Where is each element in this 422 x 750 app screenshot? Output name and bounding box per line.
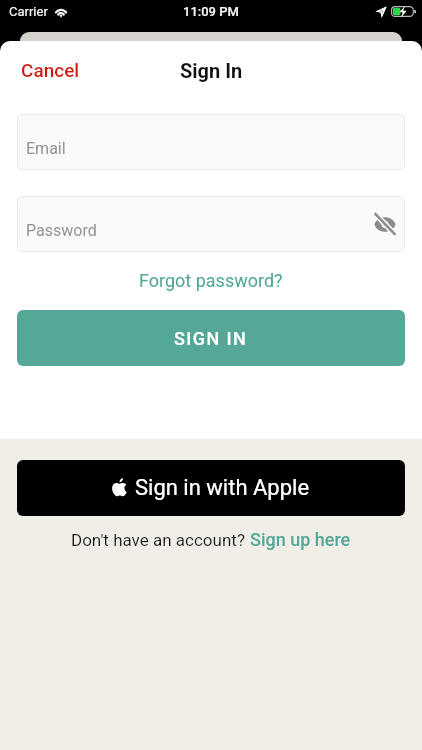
button[interactable]: SIGN IN [17,310,405,366]
button[interactable]: Sign up here [250,529,351,550]
button[interactable]: Email [17,114,405,170]
other: Battery charging [391,6,416,17]
staticText: Forgot password? [139,270,283,291]
button[interactable]: Cancel [0,51,94,89]
staticText: SIGN IN [174,328,248,349]
staticText: Sign up here [250,529,351,550]
staticText: Sign in with Apple [135,475,310,501]
staticText: Sign In [180,59,243,82]
staticText: Carrier [9,4,48,19]
button[interactable]: Forgot password? [0,267,422,294]
button[interactable]: Password [17,196,405,252]
staticText: Password [26,221,97,240]
button[interactable]: Sign in with Apple [17,460,405,516]
staticText: Cancel [21,59,80,81]
button[interactable]: Show password [368,207,402,241]
staticText: Don't have an account? [71,530,250,550]
staticText: Email [26,139,66,158]
other: Location [377,7,386,16]
staticText: 11:09 PM [183,4,239,19]
